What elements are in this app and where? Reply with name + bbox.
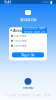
staticText: VERIFIED xyxy=(22,86,33,89)
staticText: © 2024 Company · Privacy · Terms xyxy=(5,93,50,97)
staticText: SIGN IN xyxy=(20,17,36,22)
staticText: Sign In xyxy=(21,52,35,57)
button[interactable]: Sign In xyxy=(12,52,44,57)
staticText: Username xyxy=(14,34,27,37)
staticText: 9:41 xyxy=(4,0,11,5)
staticText: ••• ▮ xyxy=(43,0,52,5)
staticText: Account xyxy=(13,28,30,33)
staticText: Username xyxy=(14,39,27,42)
staticText: Username xyxy=(14,44,27,47)
staticText: Continue with single sign-on xyxy=(24,27,45,34)
